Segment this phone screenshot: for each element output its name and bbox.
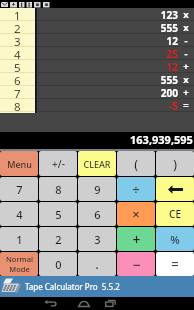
staticText: - bbox=[178, 34, 194, 47]
staticText: − bbox=[132, 255, 141, 274]
button[interactable]: 555 bbox=[37, 73, 194, 86]
staticText: 0 bbox=[55, 257, 62, 272]
button[interactable]: -5 bbox=[37, 99, 194, 112]
button[interactable]: Home bbox=[63, 297, 104, 310]
button[interactable]: 2 bbox=[39, 227, 77, 251]
button[interactable]: CLEAR bbox=[78, 151, 116, 176]
staticText: -5 bbox=[37, 99, 178, 112]
button[interactable]: 12 bbox=[37, 60, 194, 73]
button[interactable]: 3 bbox=[78, 227, 116, 251]
staticText: 555 bbox=[37, 21, 178, 34]
staticText: . bbox=[95, 255, 99, 273]
staticText: × bbox=[132, 205, 140, 223]
staticText: + bbox=[132, 230, 141, 249]
button[interactable]: 8 bbox=[0, 99, 35, 112]
button[interactable]: = bbox=[156, 252, 194, 276]
button[interactable]: 4 bbox=[0, 47, 35, 60]
button[interactable]: 7 bbox=[0, 86, 35, 99]
button[interactable]: Backspace bbox=[156, 177, 194, 201]
staticText: Normal Mode bbox=[6, 254, 33, 274]
staticText: 8 bbox=[55, 182, 62, 197]
staticText: 9 bbox=[94, 182, 101, 197]
staticText: 1 bbox=[16, 232, 23, 247]
button[interactable]: 2 bbox=[0, 21, 35, 34]
staticText: 25 bbox=[37, 47, 178, 60]
other: Backspace bbox=[167, 185, 184, 194]
staticText: ÷ bbox=[132, 180, 140, 198]
button[interactable]: 200 bbox=[37, 86, 194, 99]
button[interactable]: 1 bbox=[0, 227, 38, 251]
button[interactable]: 4 bbox=[0, 202, 38, 226]
staticText: +/- bbox=[52, 157, 65, 171]
staticText: 123 bbox=[37, 8, 178, 21]
staticText: x bbox=[178, 8, 194, 21]
staticText: 6 bbox=[94, 207, 101, 222]
staticText: 163,939,595 bbox=[130, 132, 193, 147]
staticText: 3 bbox=[14, 34, 21, 47]
staticText: Tape Calculator Pro 5.5.2 bbox=[25, 281, 120, 292]
staticText: + bbox=[178, 60, 194, 73]
staticText: x bbox=[178, 21, 194, 34]
staticText: ) bbox=[173, 156, 177, 172]
button[interactable]: 25 bbox=[37, 47, 194, 60]
button[interactable]: 123 bbox=[37, 8, 194, 21]
button[interactable]: 6 bbox=[0, 73, 35, 86]
button[interactable]: 9 bbox=[78, 177, 116, 201]
staticText: 12 bbox=[37, 60, 178, 73]
button[interactable]: 1 bbox=[0, 8, 35, 21]
staticText: x bbox=[178, 73, 194, 86]
button[interactable]: + bbox=[117, 227, 155, 251]
staticText: 2 bbox=[14, 21, 21, 34]
staticText: 7 bbox=[14, 86, 21, 99]
staticText: 1 bbox=[14, 8, 21, 21]
button[interactable]: Tape Calculator Pro 5.5.2 bbox=[0, 276, 194, 297]
button[interactable]: 5 bbox=[39, 202, 77, 226]
staticText: Menu bbox=[7, 158, 32, 170]
staticText: 5 bbox=[55, 207, 62, 222]
button[interactable]: 163,939,595 bbox=[0, 132, 194, 151]
staticText: 12 bbox=[37, 34, 178, 47]
staticText: 7 bbox=[16, 182, 23, 197]
staticText: 4 bbox=[14, 47, 21, 60]
button[interactable]: Recent apps bbox=[104, 297, 188, 310]
button[interactable]: − bbox=[117, 252, 155, 276]
staticText: 8 bbox=[14, 99, 21, 112]
button[interactable]: 5 bbox=[0, 60, 35, 73]
staticText: % bbox=[170, 232, 180, 247]
button[interactable]: 12 bbox=[37, 34, 194, 47]
button[interactable]: Menu bbox=[0, 151, 38, 176]
staticText: 4 bbox=[16, 207, 23, 222]
staticText: 5 bbox=[14, 60, 21, 73]
button[interactable]: 7 bbox=[0, 177, 38, 201]
staticText: 2 bbox=[55, 232, 62, 247]
button[interactable]: Normal Mode bbox=[0, 252, 38, 276]
staticText: 555 bbox=[37, 73, 178, 86]
button[interactable]: ÷ bbox=[117, 177, 155, 201]
button[interactable]: 8 bbox=[39, 177, 77, 201]
button[interactable]: . bbox=[78, 252, 116, 276]
staticText: 3 bbox=[94, 232, 101, 247]
button[interactable]: Back bbox=[7, 297, 63, 310]
staticText: - bbox=[178, 47, 194, 60]
button[interactable]: 6 bbox=[78, 202, 116, 226]
staticText: ( bbox=[134, 156, 138, 172]
staticText: 6 bbox=[14, 73, 21, 86]
staticText: = bbox=[178, 99, 194, 112]
button[interactable]: 555 bbox=[37, 21, 194, 34]
staticText: = bbox=[171, 255, 179, 273]
staticText: CE bbox=[169, 207, 181, 221]
button[interactable]: 3 bbox=[0, 34, 35, 47]
button[interactable]: +/- bbox=[39, 151, 77, 176]
button[interactable]: × bbox=[117, 202, 155, 226]
button[interactable]: % bbox=[156, 227, 194, 251]
staticText: CLEAR bbox=[83, 158, 111, 170]
button[interactable]: ) bbox=[156, 151, 194, 176]
button[interactable]: CE bbox=[156, 202, 194, 226]
button[interactable]: 0 bbox=[39, 252, 77, 276]
staticText: + bbox=[178, 86, 194, 99]
staticText: 200 bbox=[37, 86, 178, 99]
button[interactable]: ( bbox=[117, 151, 155, 176]
